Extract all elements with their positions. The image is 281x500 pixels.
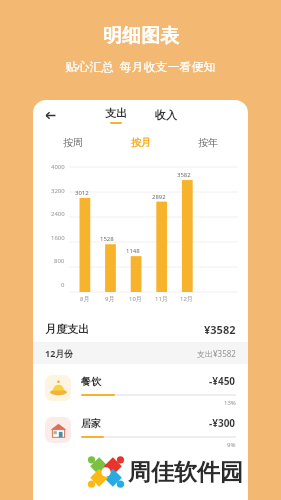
staticText: 明细图表 [103,24,179,48]
staticText: 3200 [51,187,65,195]
button[interactable]: 按年 [192,133,224,152]
button[interactable]: 月度支出 [45,316,236,342]
staticText: 收入 [155,108,177,122]
button[interactable]: 居家 [45,409,236,451]
staticText: 2400 [51,210,65,218]
staticText: 3012 [75,189,89,197]
staticText: 9月 [105,295,115,303]
staticText: 12月份 [45,347,74,359]
staticText: 3582 [177,171,191,179]
staticText: 0 [61,281,65,289]
staticText: 按周 [63,136,83,149]
staticText: 支出 [105,106,127,120]
staticText: 11月 [155,295,168,303]
staticText: 贴心汇总 每月收支一看便知 [65,58,216,74]
staticText: 1148 [126,247,140,255]
staticText: 800 [54,257,65,265]
staticText: ¥3582 [204,322,236,337]
staticText: 餐饮 [81,375,101,388]
staticText: 8月 [80,295,90,303]
staticText: 9% [227,441,236,449]
staticText: 4000 [51,163,65,171]
staticText: 按年 [198,136,218,149]
button[interactable]: Back [39,104,61,126]
staticText: 支出¥3582 [197,348,236,359]
button[interactable]: 收入 [150,105,182,125]
staticText: 12月 [180,295,193,303]
staticText: -¥300 [209,416,236,430]
button[interactable]: 按月 [125,133,157,152]
staticText: 13% [224,399,236,407]
staticText: 1600 [51,234,65,242]
staticText: 居家 [81,417,101,430]
staticText: 2892 [152,193,166,201]
staticText: 10月 [129,295,142,303]
staticText: 1528 [100,235,114,243]
staticText: 周佳软件园 [128,458,243,487]
button[interactable]: 餐饮 [45,367,236,409]
staticText: 按月 [131,136,151,149]
button[interactable]: 按周 [57,133,89,152]
button[interactable]: 支出 [100,106,132,124]
staticText: -¥450 [209,374,236,388]
staticText: 月度支出 [45,322,89,336]
